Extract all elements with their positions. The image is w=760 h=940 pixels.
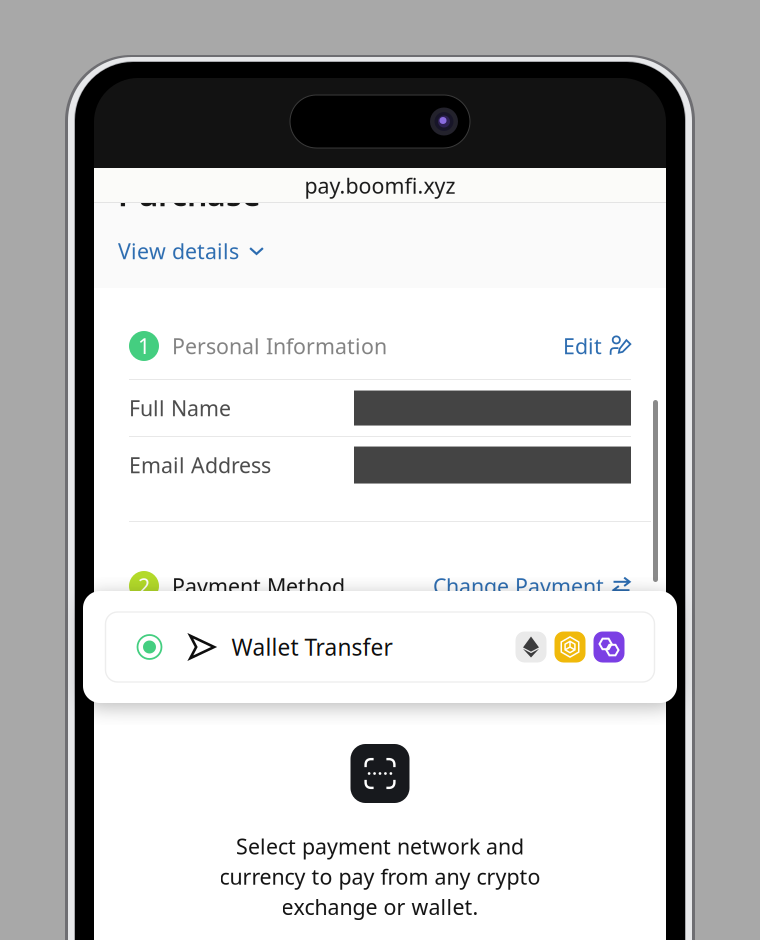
staticText: Wallet Transfer [231,632,392,662]
staticText: 1 [138,332,150,360]
button[interactable]: Change Payment [433,571,631,601]
staticText: Select payment network and [236,832,524,860]
staticText: Full Name [129,394,231,422]
staticText: Personal Information [172,332,387,360]
staticText: currency to pay from any crypto [219,862,540,891]
staticText: Payment Method [172,572,345,600]
staticText: Change Payment [433,572,604,600]
staticText: View details [118,237,239,265]
staticText: pay.boomfi.xyz [304,171,455,200]
staticText: Email Address [129,451,271,479]
staticText: 2 [138,572,150,600]
staticText: exchange or wallet. [281,893,478,921]
staticText: Purchase [118,172,261,215]
staticText: Edit [563,332,602,360]
button[interactable]: View details [118,240,264,262]
button[interactable]: Edit [563,331,631,361]
button[interactable]: Wallet Transfer [105,612,654,682]
